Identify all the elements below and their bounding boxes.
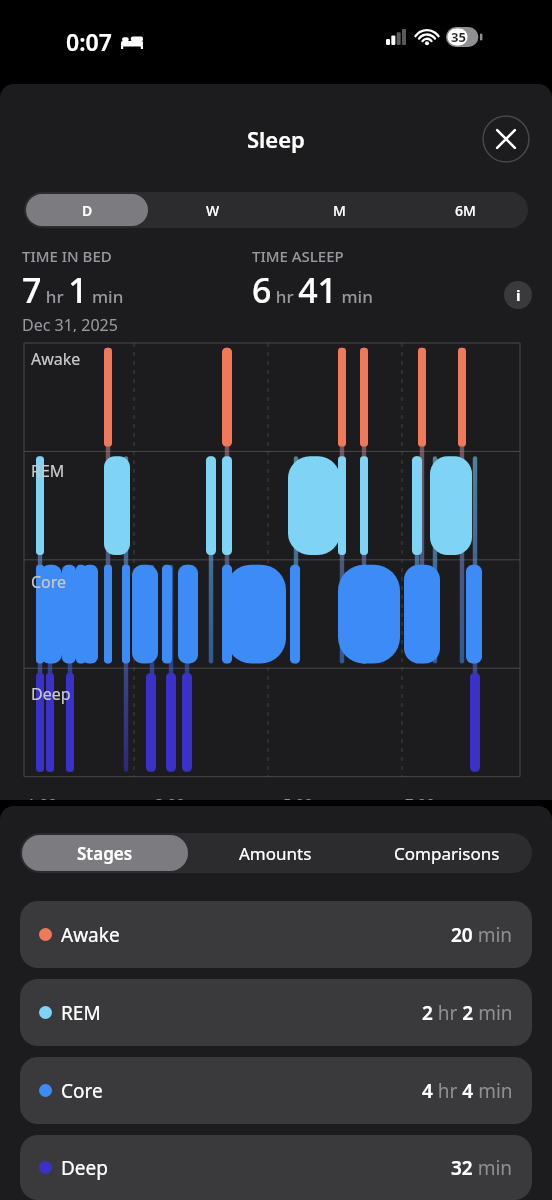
staticText: TIME IN BED <box>22 246 112 266</box>
button[interactable]: 6M <box>404 194 526 226</box>
staticText: Amounts <box>239 842 312 865</box>
staticText: 2 hr 2 min <box>422 1000 513 1026</box>
staticText: Awake <box>31 348 81 370</box>
button[interactable]: Information <box>504 281 532 309</box>
staticText: Sleep <box>247 124 305 154</box>
button[interactable]: Close <box>482 115 530 163</box>
button[interactable]: Deep <box>20 1135 532 1200</box>
staticText: D <box>82 201 93 220</box>
staticText: 4 hr 4 min <box>422 1078 513 1104</box>
button[interactable]: D <box>26 194 148 226</box>
staticText: 7 hr 1 min <box>22 267 124 313</box>
staticText: TIME ASLEEP <box>252 246 344 266</box>
staticText: REM <box>31 460 65 482</box>
staticText: i <box>516 285 521 305</box>
button[interactable]: Comparisons <box>363 835 530 871</box>
staticText: 5:00 <box>283 793 313 800</box>
staticText: 1:00 <box>27 793 57 800</box>
button[interactable]: W <box>152 194 274 226</box>
staticText: Awake <box>61 922 120 948</box>
button[interactable]: M <box>278 194 400 226</box>
staticText: Core <box>31 571 67 593</box>
button[interactable]: REM <box>20 979 532 1046</box>
staticText: REM <box>61 1000 101 1026</box>
button[interactable]: Stages <box>22 835 188 871</box>
button[interactable]: Awake <box>20 901 532 968</box>
staticText: 7:00 <box>405 793 435 800</box>
staticText: Deep <box>31 683 71 705</box>
staticText: Stages <box>77 842 133 865</box>
staticText: 3:00 <box>155 793 185 800</box>
staticText: Deep <box>61 1155 108 1181</box>
staticText: 20 min <box>451 922 513 948</box>
staticText: Comparisons <box>394 842 500 865</box>
staticText: Core <box>61 1078 103 1104</box>
staticText: 32 min <box>451 1155 513 1181</box>
staticText: 6M <box>455 201 476 220</box>
staticText: M <box>333 201 346 220</box>
button[interactable]: Amounts <box>192 835 359 871</box>
staticText: 35 <box>451 28 466 46</box>
staticText: 6 hr 41 min <box>252 267 373 313</box>
button[interactable]: Core <box>20 1057 532 1124</box>
staticText: Dec 31, 2025 <box>22 314 118 332</box>
staticText: W <box>206 201 220 220</box>
staticText: 0:07 <box>66 26 112 57</box>
